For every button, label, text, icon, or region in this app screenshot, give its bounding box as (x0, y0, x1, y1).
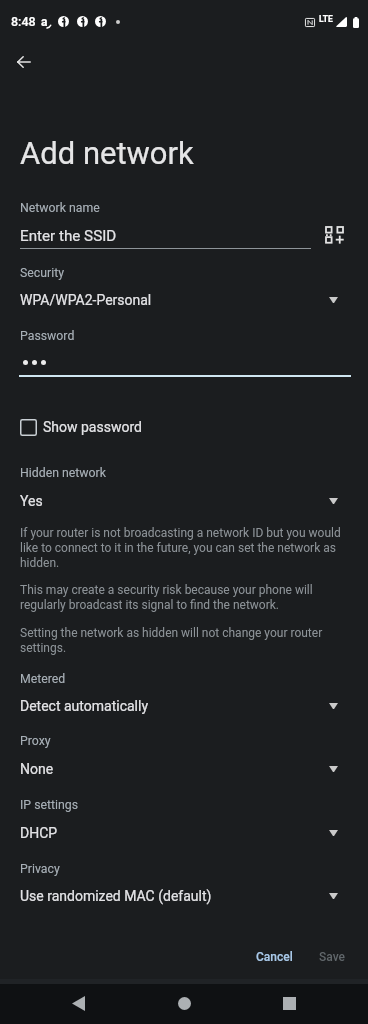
button[interactable]: Recent apps (265, 984, 313, 1023)
button[interactable]: Scan QR code to add network (316, 217, 352, 253)
staticText: Privacy (20, 862, 60, 876)
staticText: 8:48 (11, 14, 36, 29)
staticText: a (41, 15, 48, 26)
button[interactable]: Home (160, 984, 208, 1023)
staticText: Security (20, 266, 65, 280)
button[interactable]: Detect automatically (0, 698, 368, 724)
staticText: This may create a security risk because … (20, 583, 340, 612)
staticText: None (20, 761, 54, 777)
staticText: Cancel (256, 950, 293, 964)
button[interactable]: WPA/WPA2-Personal (0, 292, 368, 318)
button[interactable]: Navigate up (4, 42, 44, 82)
staticText: Use randomized MAC (default) (20, 888, 212, 904)
staticText: Network name (20, 201, 100, 215)
button[interactable]: Use randomized MAC (default) (0, 888, 368, 914)
button[interactable]: DHCP (0, 825, 368, 851)
staticText: Save (319, 950, 345, 964)
staticText: LTE (319, 14, 333, 24)
staticText: Show password (43, 419, 142, 435)
staticText: Yes (20, 493, 43, 509)
staticText: Add network (20, 135, 194, 171)
staticText: DHCP (20, 825, 58, 841)
button[interactable]: Save (307, 944, 357, 970)
staticText: Detect automatically (20, 698, 149, 714)
button[interactable]: None (0, 761, 368, 787)
button[interactable]: Back (54, 984, 102, 1023)
button[interactable]: Show password (0, 410, 368, 444)
button[interactable]: Yes (0, 493, 368, 519)
staticText: Enter the SSID (20, 227, 117, 245)
staticText: Metered (20, 672, 66, 686)
staticText: Password (20, 329, 75, 343)
staticText: Setting the network as hidden will not c… (20, 626, 346, 655)
button[interactable]: Cancel (244, 944, 305, 970)
staticText: Hidden network (20, 466, 106, 480)
staticText: IP settings (20, 798, 79, 812)
staticText: WPA/WPA2-Personal (20, 292, 152, 308)
staticText: If your router is not broadcasting a net… (20, 526, 346, 570)
staticText: Proxy (20, 734, 51, 748)
